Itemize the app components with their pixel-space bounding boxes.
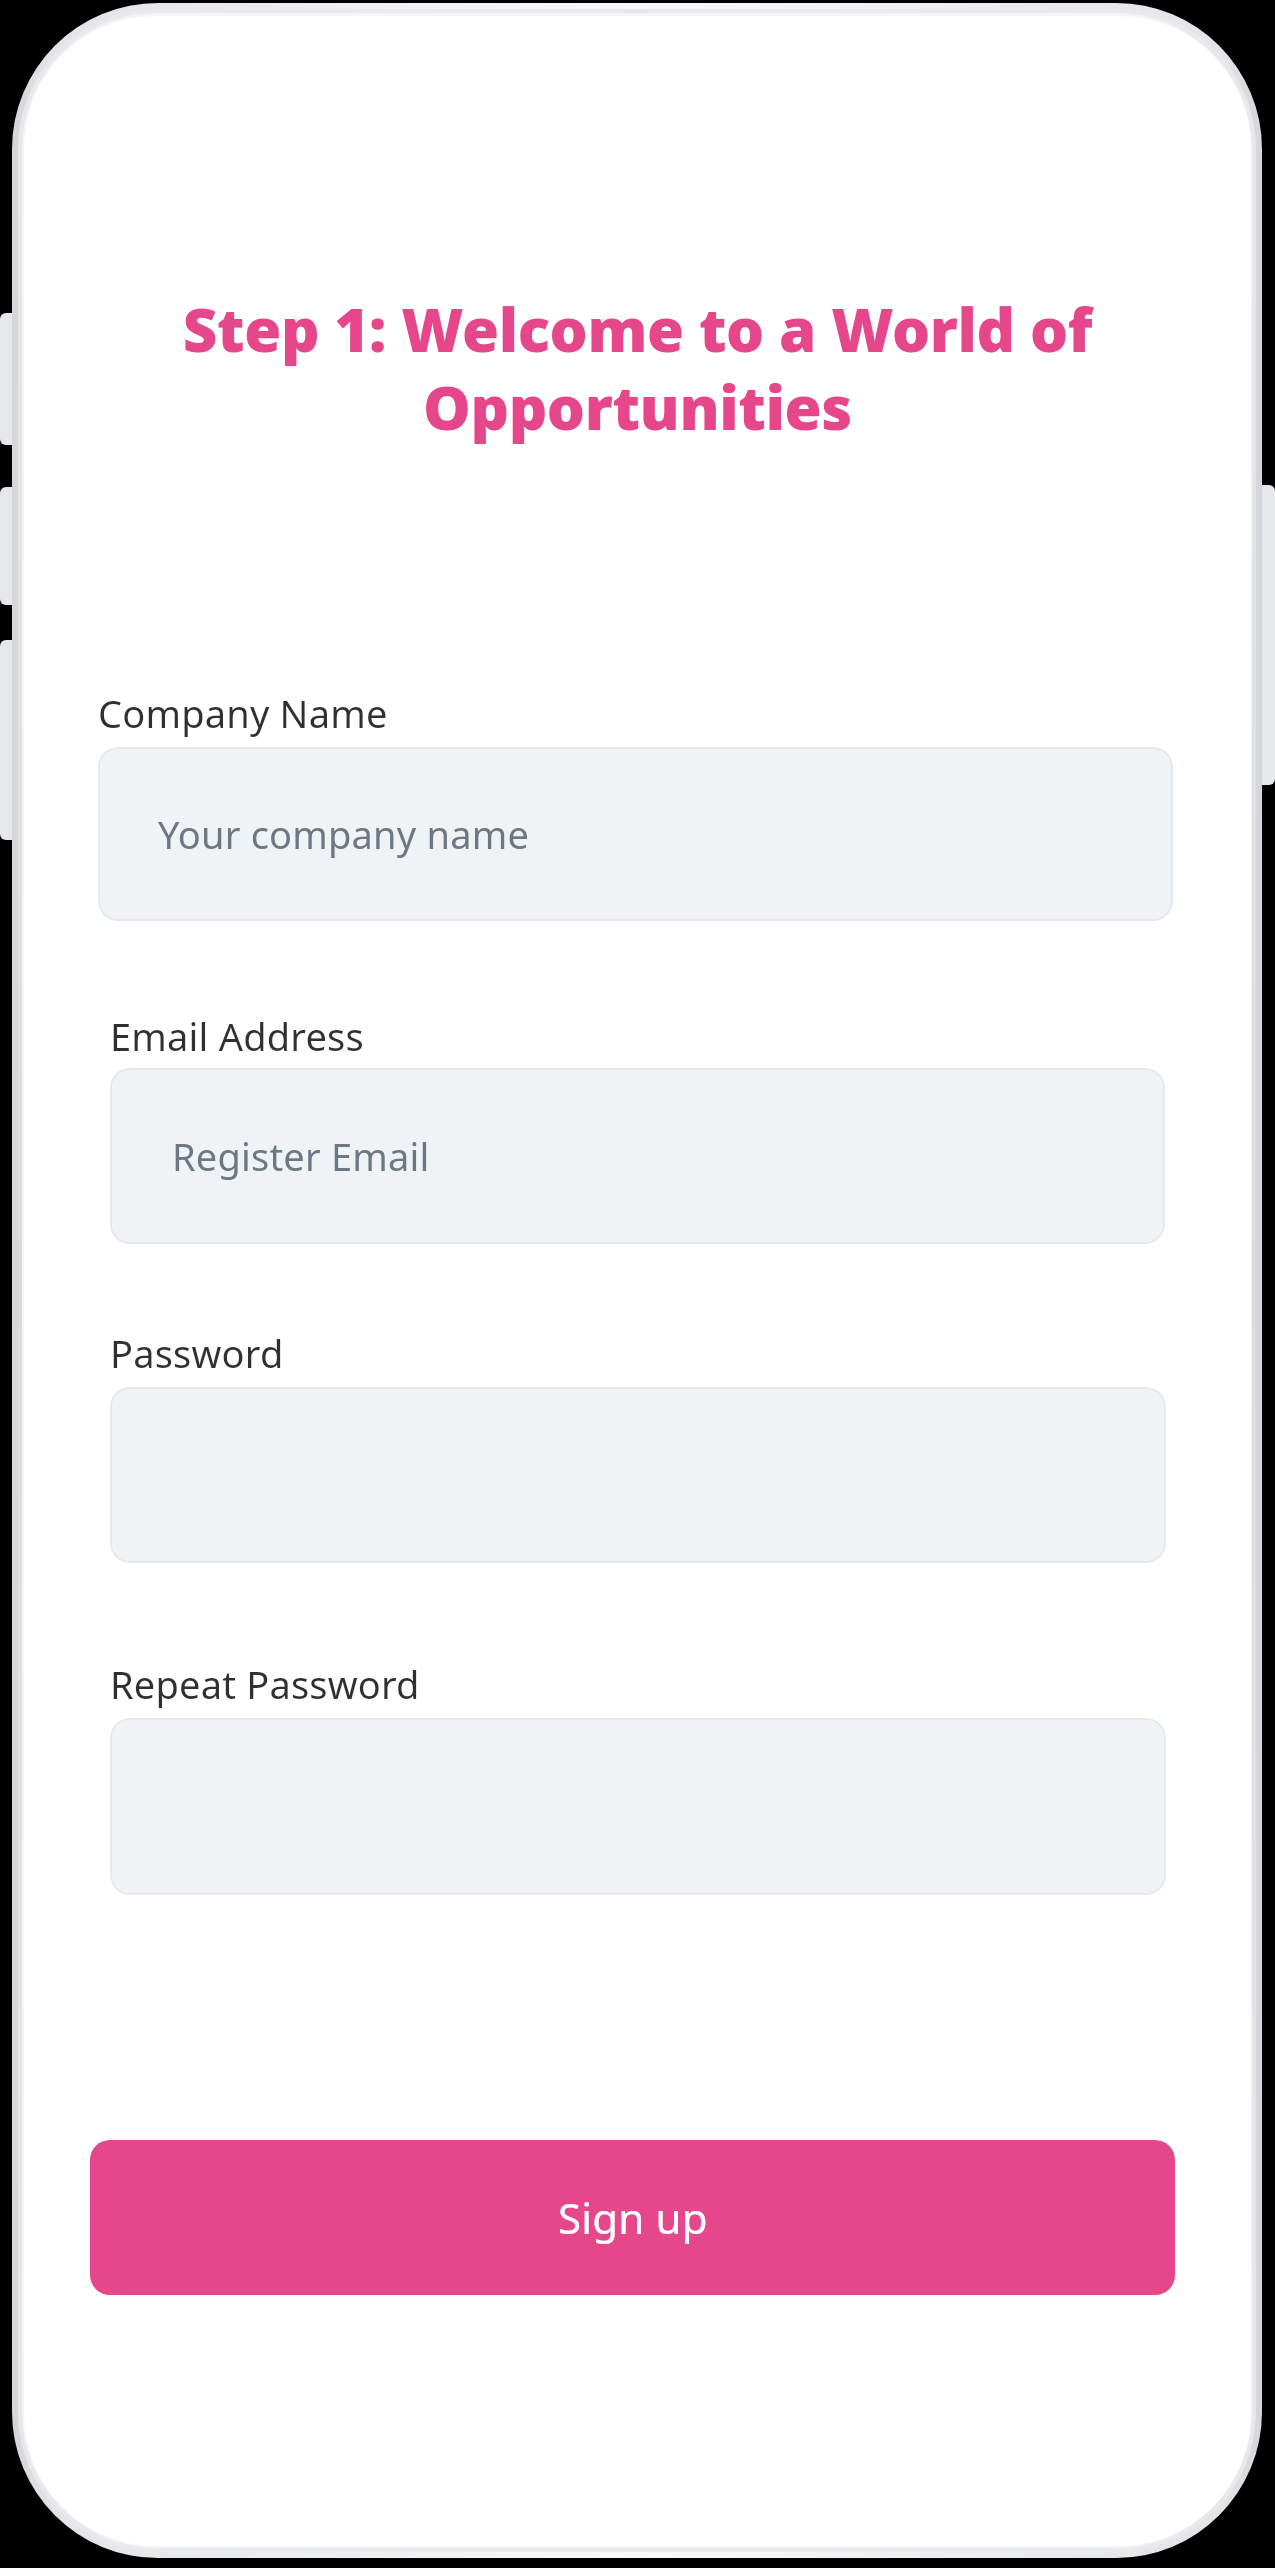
- staticText: Sign up: [558, 2189, 708, 2246]
- staticText: Register Email: [172, 1130, 430, 1182]
- staticText: Company Name: [98, 687, 388, 739]
- button[interactable]: Register Email: [110, 1068, 1165, 1244]
- button[interactable]: Sign up: [90, 2140, 1175, 2295]
- button[interactable]: Your company name: [98, 747, 1173, 921]
- staticText: Password: [110, 1327, 284, 1379]
- staticText: Your company name: [158, 808, 530, 860]
- staticText: Step 1: Welcome to a World of Opportunit…: [95, 288, 1180, 458]
- staticText: Email Address: [110, 1010, 364, 1062]
- staticText: Repeat Password: [110, 1658, 420, 1710]
